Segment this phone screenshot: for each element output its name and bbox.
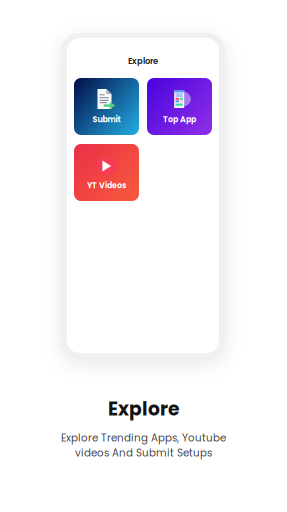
button[interactable]: YT Videos [74,144,139,201]
staticText: Submit [92,114,120,125]
staticText: Top App [163,114,196,125]
staticText: Explore [108,396,179,422]
staticText: Explore [128,55,158,67]
staticText: Explore Trending Apps, Youtube [61,431,226,445]
button[interactable]: Submit [74,78,139,135]
staticText: videos And Submit Setups [75,446,212,460]
button[interactable]: Explore [67,55,219,67]
staticText: YT Videos [87,180,126,191]
button[interactable]: Top App [147,78,212,135]
